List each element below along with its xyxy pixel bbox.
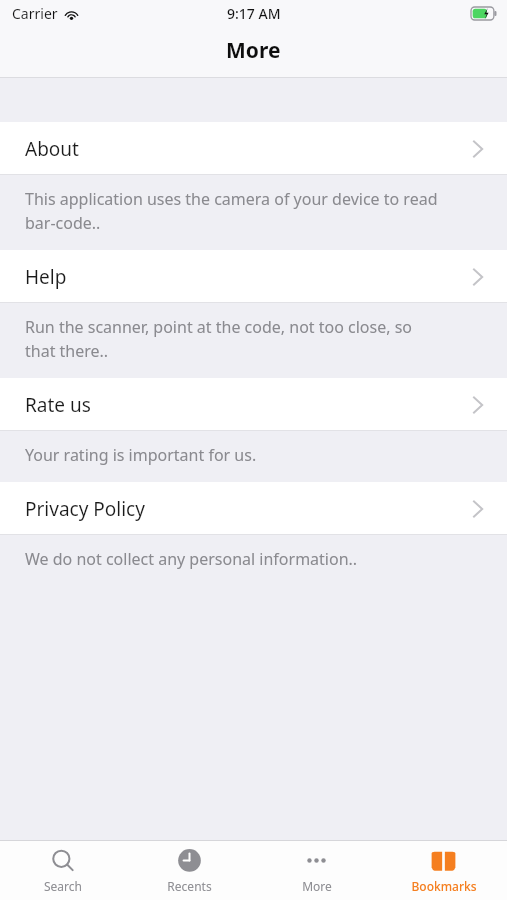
button[interactable]: Rate us bbox=[0, 378, 507, 431]
button[interactable]: Privacy Policy bbox=[0, 482, 507, 535]
staticText: Search bbox=[44, 878, 82, 894]
staticText: that there.. bbox=[25, 340, 109, 362]
staticText: This application uses the camera of your… bbox=[25, 188, 438, 210]
other: Bookmarks bbox=[430, 848, 457, 875]
button[interactable]: Help bbox=[0, 250, 507, 303]
staticText: About bbox=[25, 136, 79, 162]
staticText: Your rating is important for us. bbox=[25, 444, 257, 466]
staticText: bar-code.. bbox=[25, 212, 101, 234]
staticText: Bookmarks bbox=[411, 878, 477, 894]
button[interactable]: Search bbox=[0, 841, 126, 900]
button[interactable]: About bbox=[0, 122, 507, 175]
staticText: Privacy Policy bbox=[25, 496, 145, 522]
button[interactable]: Recents bbox=[126, 841, 253, 900]
staticText: Run the scanner, point at the code, not … bbox=[25, 316, 413, 338]
staticText: Recents bbox=[167, 878, 212, 894]
button[interactable]: Bookmarks bbox=[380, 841, 507, 900]
button[interactable]: More bbox=[253, 841, 380, 900]
staticText: 9:17 AM bbox=[227, 4, 281, 23]
staticText: We do not collect any personal informati… bbox=[25, 548, 358, 570]
other: More bbox=[303, 848, 330, 875]
other: Recents bbox=[176, 848, 203, 875]
staticText: Help bbox=[25, 264, 67, 290]
staticText: More bbox=[302, 878, 332, 894]
other: Search bbox=[50, 848, 77, 875]
staticText: Carrier bbox=[12, 4, 58, 23]
staticText: More bbox=[226, 36, 281, 65]
staticText: Rate us bbox=[25, 392, 91, 418]
